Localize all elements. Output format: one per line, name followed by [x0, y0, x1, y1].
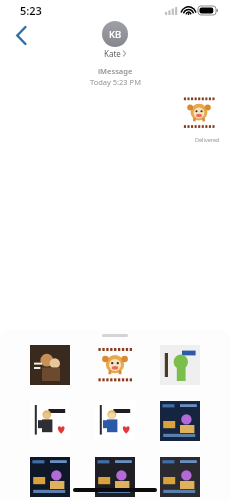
button[interactable]: App 6: [186, 476, 212, 497]
staticText: 5:23: [20, 3, 42, 18]
staticText: KB: [109, 28, 122, 41]
button[interactable]: Sticker 9: [157, 454, 203, 500]
button[interactable]: App 3: [96, 476, 122, 497]
button[interactable]: Back: [8, 22, 34, 48]
button[interactable]: Sticker 7: [27, 454, 73, 500]
button[interactable]: App Store: [35, 446, 57, 468]
button[interactable]: App 4: [126, 476, 152, 497]
button[interactable]: Sticker 5: [92, 398, 138, 444]
staticText: Kate: [104, 48, 121, 59]
staticText: Delivered: [195, 136, 220, 143]
staticText: iMessage: [70, 452, 106, 463]
button[interactable]: Sticker 2: [92, 342, 138, 388]
staticText: iMessage: [98, 66, 133, 76]
button[interactable]: iMessage: [62, 447, 222, 467]
button[interactable]: Sticker 6: [157, 398, 203, 444]
staticText: Pay: [46, 482, 58, 491]
button[interactable]: Sticker 3: [157, 342, 203, 388]
button[interactable]: App 5: [156, 476, 182, 497]
button[interactable]: App 1: [36, 476, 62, 497]
button[interactable]: App 2: [66, 476, 92, 497]
button[interactable]: Sticker 4: [27, 398, 73, 444]
button[interactable]: KB: [102, 21, 128, 59]
button[interactable]: App 0: [6, 476, 32, 497]
staticText: Today 5:23 PM: [90, 77, 141, 87]
button[interactable]: Sticker 1: [27, 342, 73, 388]
button[interactable]: [178, 92, 220, 134]
button[interactable]: Sticker 8: [92, 454, 138, 500]
